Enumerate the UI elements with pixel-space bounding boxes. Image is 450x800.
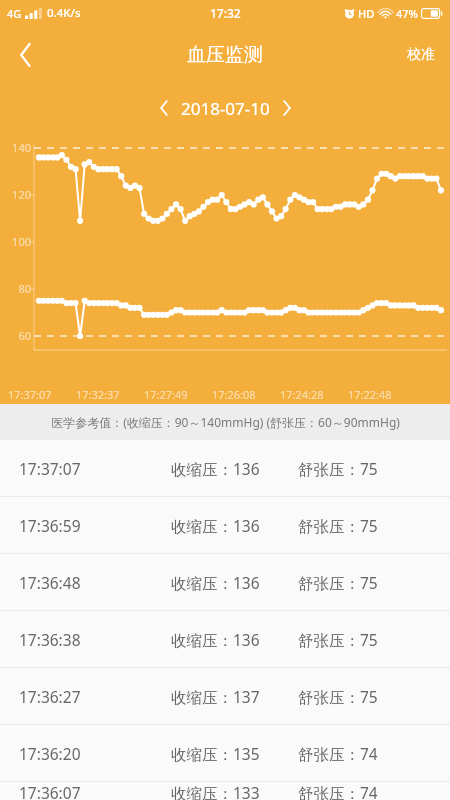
staticText: HD [358,6,375,21]
button[interactable]: Previous day [147,91,181,125]
staticText: 140 [5,140,31,155]
staticText: 47% [396,6,418,21]
staticText: 17:22:48 [348,387,392,402]
staticText: 收缩压：136 [171,515,298,536]
staticText: 17:24:28 [280,387,324,402]
staticText: 17:36:20 [19,743,171,764]
staticText: 收缩压：135 [171,743,298,764]
staticText: 60 [5,328,31,343]
staticText: 17:36:59 [19,515,171,536]
staticText: 收缩压：137 [171,686,298,707]
button[interactable]: 17:36:38 [0,611,450,667]
button[interactable]: 17:36:48 [0,554,450,610]
staticText: 17:32:37 [76,387,120,402]
staticText: 舒张压：75 [298,629,378,650]
staticText: 120 [5,187,31,202]
staticText: 0.4K/s [47,5,81,21]
staticText: 血压监测 [187,43,263,67]
button[interactable]: Back [0,29,52,81]
staticText: 收缩压：136 [171,458,298,479]
staticText: 17:36:38 [19,629,171,650]
staticText: 舒张压：75 [298,686,378,707]
staticText: 2018-07-10 [181,97,270,120]
staticText: 收缩压：136 [171,572,298,593]
staticText: 校准 [407,46,435,64]
button[interactable]: 17:36:20 [0,725,450,781]
button[interactable]: Next day [270,91,304,125]
staticText: 17:36:07 [19,782,171,800]
button[interactable]: 17:36:27 [0,668,450,724]
staticText: 17:27:49 [144,387,188,402]
staticText: 收缩压：136 [171,629,298,650]
staticText: 17:37:07 [8,387,52,402]
staticText: 舒张压：74 [298,743,378,764]
staticText: 收缩压：133 [171,782,298,800]
staticText: 17:32 [210,5,241,21]
staticText: 17:26:08 [212,387,256,402]
staticText: 17:36:27 [19,686,171,707]
button[interactable]: 校准 [392,26,450,84]
staticText: 100 [5,234,31,249]
staticText: 医学参考值：(收缩压：90～140mmHg) (舒张压：60～90mmHg) [51,414,400,430]
staticText: 舒张压：75 [298,458,378,479]
button[interactable]: 17:36:07 [0,782,450,800]
staticText: 80 [5,281,31,296]
staticText: 17:37:07 [19,458,171,479]
staticText: 4G [7,6,22,21]
staticText: 舒张压：75 [298,515,378,536]
button[interactable]: 17:37:07 [0,440,450,496]
button[interactable]: 17:36:59 [0,497,450,553]
staticText: 17:36:48 [19,572,171,593]
staticText: 舒张压：75 [298,572,378,593]
staticText: 舒张压：74 [298,782,378,800]
